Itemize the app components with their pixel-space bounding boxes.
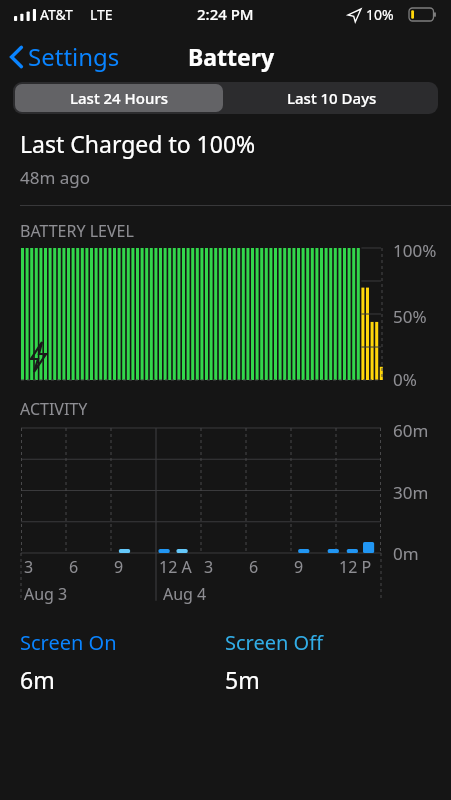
- staticText: 30m: [393, 481, 429, 504]
- staticText: 10%: [366, 5, 394, 24]
- staticText: 60m: [393, 419, 429, 442]
- staticText: 9: [294, 556, 304, 578]
- staticText: 9: [114, 556, 124, 578]
- staticText: Last 24 Hours: [70, 88, 169, 108]
- staticText: AT&T: [40, 5, 73, 24]
- staticText: Last Charged to 100%: [20, 128, 256, 159]
- staticText: 100%: [393, 239, 437, 262]
- staticText: 3: [24, 556, 34, 578]
- button[interactable]: Back: [0, 34, 128, 79]
- button[interactable]: Last 24 Hours: [15, 84, 223, 112]
- button[interactable]: Last 10 Days: [225, 82, 438, 114]
- staticText: Aug 4: [163, 583, 207, 605]
- staticText: 2:24 PM: [197, 4, 254, 24]
- staticText: 3: [204, 556, 214, 578]
- button[interactable]: Screen On: [20, 629, 225, 695]
- staticText: Battery: [188, 41, 275, 72]
- staticText: 6m: [20, 664, 55, 695]
- staticText: 0m: [393, 542, 419, 565]
- staticText: Aug 3: [24, 583, 68, 605]
- staticText: Screen On: [20, 629, 117, 656]
- button[interactable]: Screen Off: [225, 629, 451, 695]
- staticText: 48m ago: [20, 166, 91, 189]
- staticText: 0%: [393, 368, 417, 391]
- staticText: 5m: [225, 664, 260, 695]
- staticText: Screen Off: [225, 629, 323, 656]
- staticText: Last 10 Days: [287, 88, 377, 108]
- staticText: 12 A: [159, 556, 192, 578]
- staticText: LTE: [90, 5, 113, 24]
- staticText: 6: [249, 556, 259, 578]
- other: Back: [10, 46, 23, 68]
- staticText: Settings: [28, 40, 120, 73]
- staticText: 50%: [393, 305, 427, 328]
- staticText: 6: [69, 556, 79, 578]
- staticText: BATTERY LEVEL: [20, 220, 134, 242]
- staticText: 12 P: [339, 556, 372, 578]
- staticText: ACTIVITY: [20, 398, 88, 420]
